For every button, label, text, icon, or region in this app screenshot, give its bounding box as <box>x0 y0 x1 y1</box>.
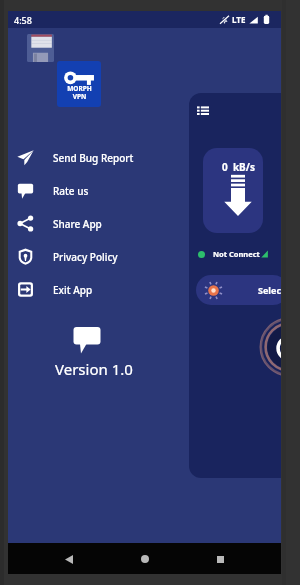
staticText: Send Bug Report <box>53 151 134 165</box>
button[interactable]: Share App <box>8 207 189 240</box>
button[interactable]: Exit App <box>8 273 189 306</box>
staticText: LTE <box>232 14 246 25</box>
staticText: MORPH VPN <box>67 84 92 101</box>
staticText: Share App <box>53 217 102 231</box>
button[interactable]: Back <box>54 544 84 574</box>
button[interactable]: Recent apps <box>205 544 235 574</box>
button[interactable]: Connect <box>259 317 281 377</box>
button[interactable]: Rate us <box>8 174 189 207</box>
button[interactable]: Open navigation menu <box>197 105 209 115</box>
staticText: Version 1.0 <box>55 359 133 379</box>
staticText: Rate us <box>53 184 89 198</box>
staticText: 0 kB/s <box>222 160 255 174</box>
staticText: 4:58 <box>14 14 32 26</box>
staticText: Select <box>258 284 281 296</box>
button[interactable]: Select <box>196 275 281 305</box>
staticText: Privacy Policy <box>53 250 118 264</box>
button[interactable]: Home <box>130 544 160 574</box>
button[interactable]: Send Bug Report <box>8 141 189 174</box>
staticText: Exit App <box>53 283 93 297</box>
button[interactable]: Privacy Policy <box>8 240 189 273</box>
staticText: Not Connect <box>213 249 260 259</box>
